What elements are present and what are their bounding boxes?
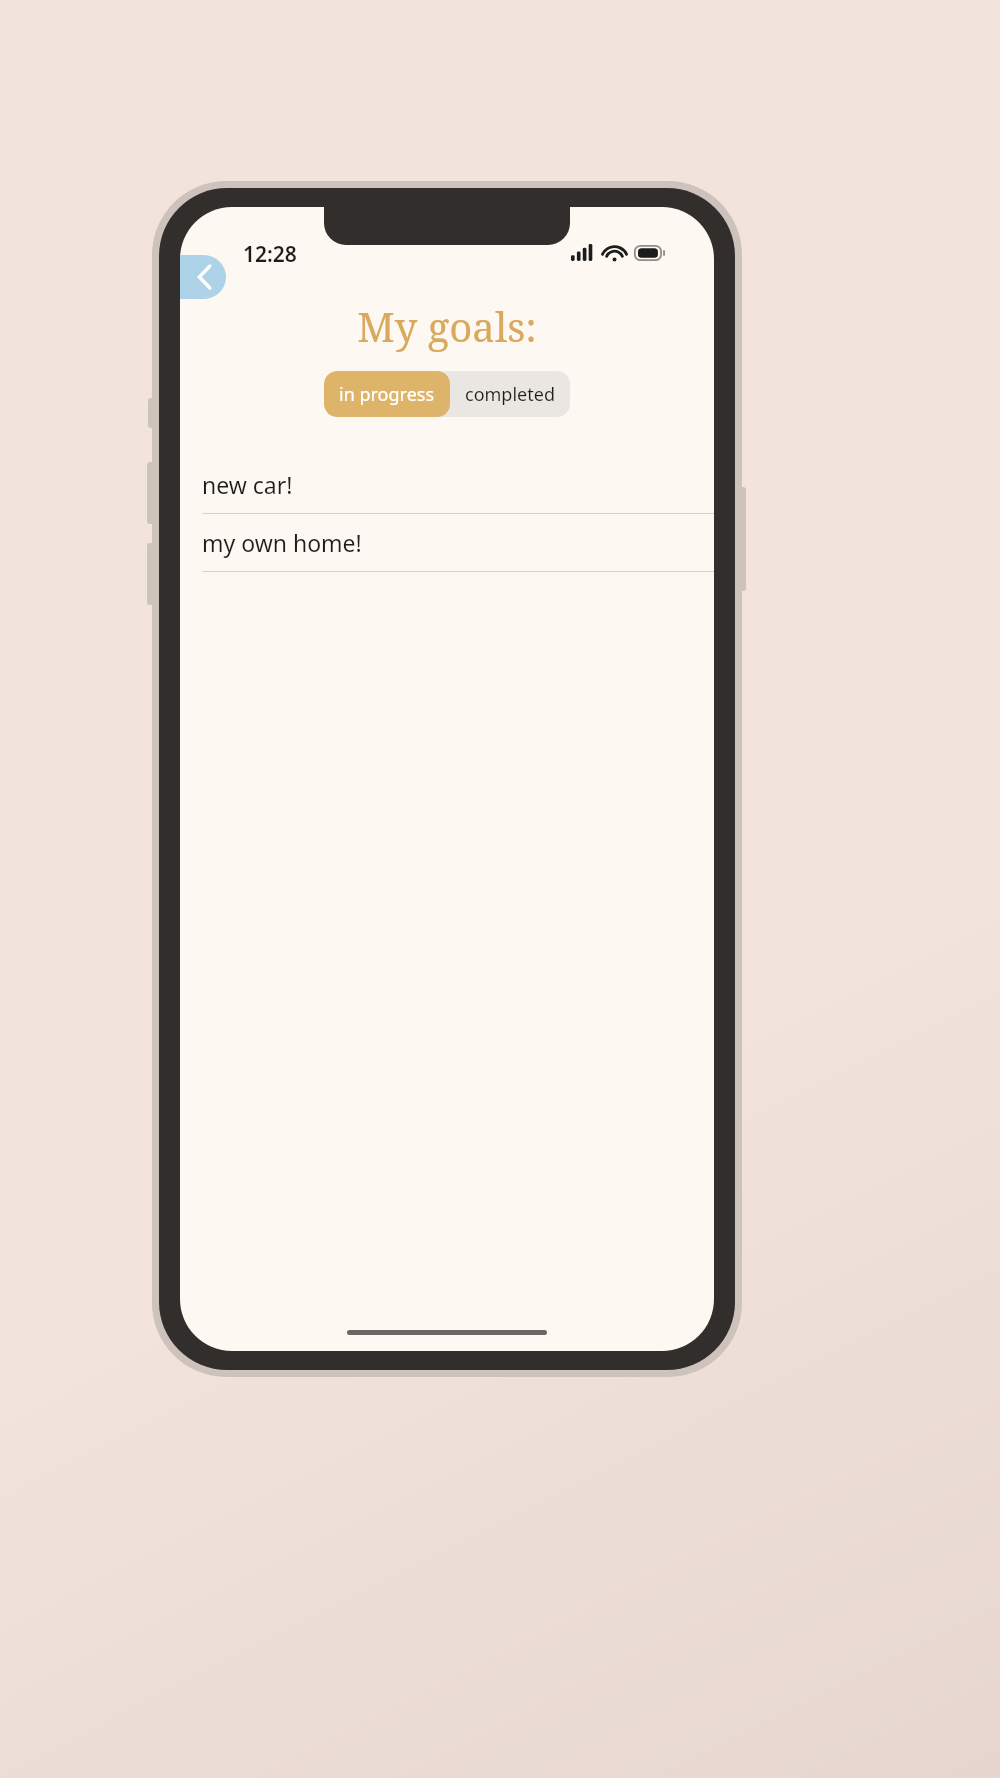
button[interactable]: Back [180,255,226,299]
staticText: My goals: [180,299,714,353]
staticText: new car! [202,469,293,500]
staticText: completed [465,382,555,407]
button[interactable]: in progress [324,371,450,417]
button[interactable]: my own home! [180,514,714,572]
staticText: in progress [339,382,435,407]
button[interactable]: completed [450,371,570,417]
staticText: my own home! [202,527,362,558]
staticText: 12:28 [243,240,297,269]
button[interactable]: new car! [180,456,714,514]
